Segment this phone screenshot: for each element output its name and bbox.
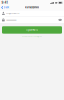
staticText: user@example.com [6,13,19,14]
staticText: •••••••••• [6,18,16,21]
staticText: Back [4,6,9,9]
button[interactable]: user@example.com [0,10,64,16]
button[interactable]: Login with Klarna [2,26,62,34]
button[interactable]: Back [0,5,9,10]
staticText: Don't have an account? Sign up [22,36,42,37]
staticText: 9:41 [2,1,8,4]
button[interactable]: Show password [58,18,62,21]
staticText: Klarna Expenses [25,6,39,9]
staticText: Login with Klarna [26,29,38,31]
button[interactable]: Don't have an account? Sign up [22,35,42,38]
